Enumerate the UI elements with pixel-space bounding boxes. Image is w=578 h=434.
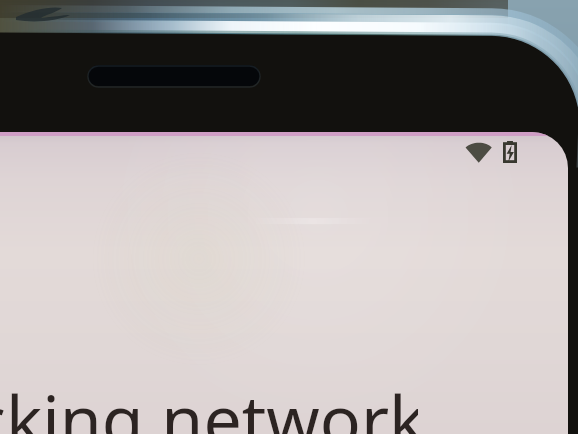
- staticText: Checking network: [0, 372, 418, 434]
- button[interactable]: Battery charging: [503, 141, 517, 163]
- button[interactable]: Wi-Fi connected: [465, 141, 492, 163]
